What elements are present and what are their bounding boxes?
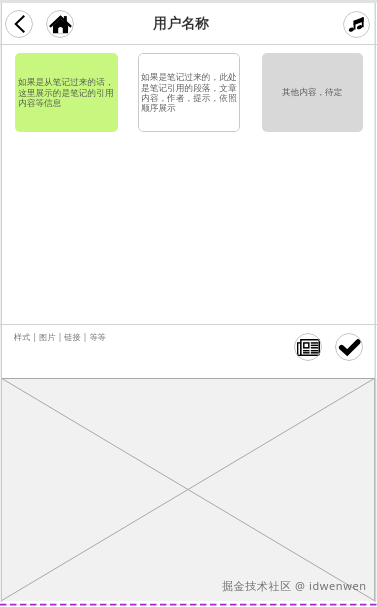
button[interactable]: Music <box>343 11 370 38</box>
button[interactable]: 如果是从笔记过来的话， 这里展示的是笔记的引用 内容等信息 <box>15 53 118 132</box>
staticText: 掘金技术社区 @ idwenwen <box>222 578 367 593</box>
button[interactable]: Article list <box>294 333 322 361</box>
staticText: 样式 | 图片 | 链接 | 等等 <box>14 331 106 342</box>
button[interactable]: 如果是笔记过来的，此处 是笔记引用的段落，文章 内容，作者，提示，依照 顺序展示 <box>138 53 240 132</box>
button[interactable]: 其他内容，待定 <box>262 53 363 132</box>
staticText: 其他内容，待定 <box>282 87 343 98</box>
button[interactable]: Confirm <box>335 333 363 361</box>
staticText: 如果是笔记过来的，此处 是笔记引用的段落，文章 内容，作者，提示，依照 顺序展示 <box>141 72 237 113</box>
staticText: 用户名称 <box>153 15 209 33</box>
button[interactable]: Back <box>5 10 33 38</box>
button[interactable]: Home <box>46 10 74 38</box>
staticText: 如果是从笔记过来的话， 这里展示的是笔记的引用 内容等信息 <box>18 77 114 108</box>
